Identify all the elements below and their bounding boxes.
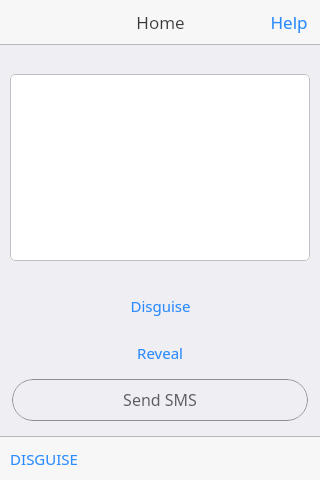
staticText: Reveal	[137, 343, 183, 363]
staticText: DISGUISE	[10, 449, 78, 469]
button[interactable]: Disguise	[0, 293, 320, 319]
button[interactable]	[10, 74, 310, 261]
button[interactable]: DISGUISE	[0, 441, 90, 477]
staticText: Home	[136, 11, 185, 34]
staticText: Disguise	[130, 296, 191, 316]
button[interactable]: Reveal	[0, 340, 320, 366]
staticText: Help	[270, 11, 308, 34]
button[interactable]: Help	[258, 1, 320, 44]
button[interactable]: Send SMS	[12, 379, 308, 421]
staticText: Send SMS	[123, 389, 197, 411]
